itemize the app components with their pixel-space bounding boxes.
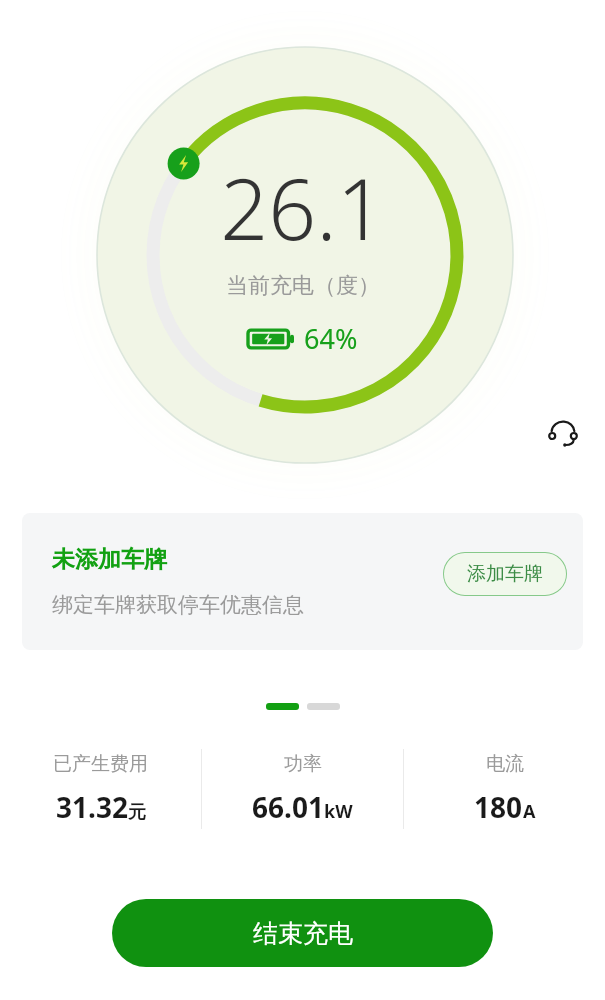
button[interactable]: 添加车牌 [443, 552, 567, 596]
button[interactable]: 结束充电 [112, 899, 493, 967]
staticText: kW [324, 799, 353, 824]
staticText: 结束充电 [253, 918, 353, 949]
button[interactable]: Customer service [530, 400, 595, 465]
button[interactable]: 已产生费用 [0, 752, 201, 826]
staticText: 添加车牌 [467, 562, 543, 586]
staticText: 已产生费用 [53, 752, 148, 776]
staticText: 66.01 [252, 788, 324, 826]
staticText: 当前充电（度） [226, 272, 380, 300]
button[interactable]: 电流 [404, 752, 605, 826]
staticText: 26.1 [220, 150, 385, 264]
staticText: 31.32 [56, 788, 128, 826]
staticText: 绑定车牌获取停车优惠信息 [52, 592, 304, 618]
staticText: 电流 [486, 752, 524, 776]
staticText: 功率 [284, 752, 322, 776]
staticText: A [523, 799, 536, 824]
staticText: 180 [474, 788, 523, 826]
staticText: 未添加车牌 [52, 545, 167, 574]
staticText: 64% [304, 320, 358, 357]
button[interactable]: 功率 [202, 752, 403, 826]
staticText: 元 [128, 801, 146, 824]
button[interactable]: 未添加车牌 [22, 513, 583, 650]
